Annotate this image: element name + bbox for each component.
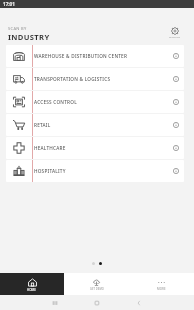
button[interactable]: GET DEMO	[64, 273, 129, 295]
button[interactable]: RETAIL	[6, 114, 184, 136]
button[interactable]: ACCESS CONTROL	[6, 91, 184, 113]
staticText: HEALTHCARE	[34, 145, 167, 151]
button[interactable]: Back	[136, 300, 142, 306]
staticText: HOME	[27, 288, 37, 292]
staticText: MORE	[157, 287, 166, 291]
staticText: SCAN BY	[8, 26, 27, 31]
button[interactable]: TRANSPORTATION & LOGISTICS	[6, 68, 184, 90]
button[interactable]: Settings	[163, 27, 186, 39]
staticText: 17:01	[3, 1, 15, 7]
staticText: INDUSTRY	[8, 32, 50, 42]
button[interactable]: MORE	[129, 273, 194, 295]
staticText: TRANSPORTATION & LOGISTICS	[34, 76, 167, 82]
staticText: ACCESS CONTROL	[34, 99, 167, 105]
button[interactable]: HEALTHCARE	[6, 137, 184, 159]
staticText: SETTINGS	[169, 36, 180, 39]
staticText: WAREHOUSE & DISTRIBUTION CENTER	[34, 53, 167, 59]
staticText: GET DEMO	[90, 287, 104, 291]
staticText: RETAIL	[34, 122, 167, 128]
button[interactable]: Recent apps	[52, 300, 58, 306]
button[interactable]: HOME	[0, 273, 64, 295]
button[interactable]: Home	[94, 300, 100, 306]
button[interactable]: HOSPITALITY	[6, 160, 184, 182]
button[interactable]: WAREHOUSE & DISTRIBUTION CENTER	[6, 45, 184, 67]
staticText: HOSPITALITY	[34, 168, 167, 174]
